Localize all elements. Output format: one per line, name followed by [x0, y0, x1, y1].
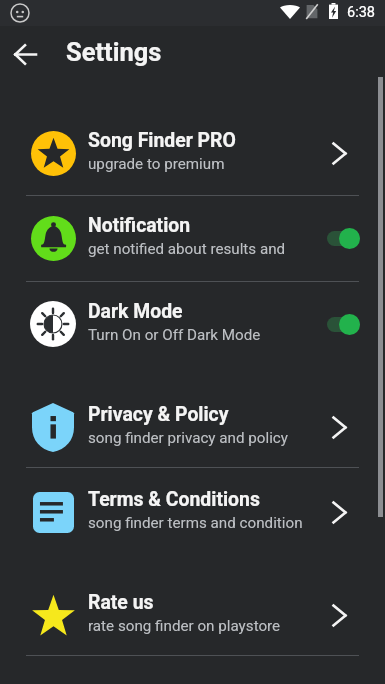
staticText: Song Finder PRO — [88, 129, 236, 152]
button[interactable]: Rate us — [0, 576, 385, 654]
staticText: Turn On or Off Dark Mode — [88, 326, 261, 344]
staticText: Notification — [88, 214, 191, 237]
button[interactable]: Dark Mode — [0, 285, 385, 363]
staticText: 6:38 — [347, 4, 375, 21]
staticText: Rate us — [88, 591, 154, 614]
button[interactable]: Song Finder PRO — [0, 114, 385, 192]
button[interactable]: Terms & Conditions — [0, 473, 385, 551]
staticText: song finder terms and condition — [88, 514, 303, 532]
staticText: song finder privacy and policy — [88, 429, 288, 447]
staticText: rate song finder on playstore — [88, 617, 281, 635]
staticText: Settings — [66, 37, 162, 67]
staticText: Dark Mode — [88, 300, 183, 323]
staticText: Terms & Conditions — [88, 488, 260, 511]
staticText: upgrade to premium — [88, 155, 225, 173]
staticText: get notified about results and — [88, 240, 286, 258]
staticText: Privacy & Policy — [88, 403, 229, 426]
button[interactable]: Privacy & Policy — [0, 388, 385, 466]
button[interactable]: Notification — [0, 199, 385, 277]
button[interactable]: Back — [3, 32, 47, 76]
